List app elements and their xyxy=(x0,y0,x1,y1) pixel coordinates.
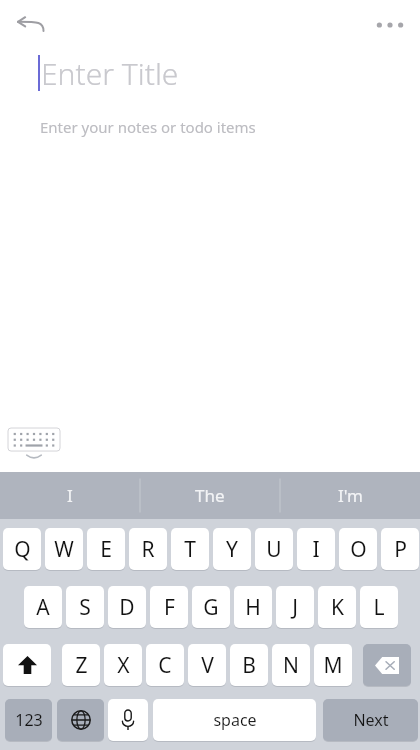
button[interactable]: K xyxy=(318,586,356,628)
button[interactable]: L xyxy=(360,586,398,628)
button[interactable]: D xyxy=(108,586,146,628)
staticText: H xyxy=(245,593,261,622)
staticText: Next xyxy=(353,709,389,731)
staticText: G xyxy=(203,593,219,622)
button[interactable]: M xyxy=(314,644,352,686)
staticText: V xyxy=(201,651,214,680)
button[interactable]: Q xyxy=(3,528,41,570)
staticText: X xyxy=(117,651,130,680)
button[interactable]: T xyxy=(171,528,209,570)
button[interactable]: V xyxy=(188,644,226,686)
button[interactable]: Voice input xyxy=(108,699,148,741)
staticText: A xyxy=(36,593,50,622)
staticText: M xyxy=(323,651,343,680)
button[interactable]: The xyxy=(140,472,280,519)
staticText: U xyxy=(266,535,282,564)
button[interactable]: B xyxy=(230,644,268,686)
staticText: O xyxy=(350,535,367,564)
staticText: Q xyxy=(14,535,31,564)
staticText: W xyxy=(54,535,74,564)
staticText: The xyxy=(195,484,225,507)
staticText: S xyxy=(79,593,91,622)
staticText: B xyxy=(242,651,256,680)
staticText: Enter Title xyxy=(41,53,179,94)
button[interactable]: C xyxy=(146,644,184,686)
button[interactable]: Back xyxy=(8,6,52,42)
staticText: I'm xyxy=(338,484,363,507)
button[interactable]: N xyxy=(272,644,310,686)
button[interactable]: W xyxy=(45,528,83,570)
button[interactable]: space xyxy=(153,699,316,741)
staticText: 123 xyxy=(15,709,43,731)
staticText: I xyxy=(67,484,73,507)
staticText: L xyxy=(373,593,385,622)
button[interactable]: O xyxy=(339,528,377,570)
staticText: K xyxy=(331,593,344,622)
staticText: R xyxy=(141,535,155,564)
button[interactable]: More options xyxy=(368,8,412,42)
button[interactable]: Shift xyxy=(3,644,51,686)
button[interactable]: A xyxy=(24,586,62,628)
staticText: Y xyxy=(226,535,238,564)
button[interactable]: Z xyxy=(62,644,100,686)
button[interactable]: F xyxy=(150,586,188,628)
button[interactable]: I xyxy=(297,528,335,570)
staticText: E xyxy=(100,535,112,564)
button[interactable]: U xyxy=(255,528,293,570)
staticText: F xyxy=(164,593,175,622)
staticText: T xyxy=(184,535,196,564)
button[interactable]: G xyxy=(192,586,230,628)
staticText: P xyxy=(394,535,407,564)
staticText: I xyxy=(312,535,320,564)
button[interactable]: J xyxy=(276,586,314,628)
staticText: Enter your notes or todo items xyxy=(40,117,256,137)
staticText: Z xyxy=(75,651,88,680)
button[interactable]: Backspace xyxy=(363,644,411,686)
button[interactable]: Change keyboard xyxy=(57,699,104,741)
staticText: N xyxy=(283,651,299,680)
button[interactable]: I xyxy=(0,472,140,519)
button[interactable]: S xyxy=(66,586,104,628)
staticText: J xyxy=(292,593,298,622)
button[interactable]: P xyxy=(381,528,419,570)
staticText: space xyxy=(213,709,257,731)
staticText: C xyxy=(158,651,172,680)
button[interactable]: X xyxy=(104,644,142,686)
button[interactable]: H xyxy=(234,586,272,628)
button[interactable]: E xyxy=(87,528,125,570)
button[interactable]: 123 xyxy=(5,699,52,741)
button[interactable]: I'm xyxy=(280,472,420,519)
button[interactable]: Hide keyboard xyxy=(8,428,60,460)
button[interactable]: Y xyxy=(213,528,251,570)
button[interactable]: Enter Title xyxy=(30,48,390,98)
button[interactable]: Enter your notes or todo items xyxy=(40,112,380,142)
button[interactable]: R xyxy=(129,528,167,570)
button[interactable]: Next xyxy=(323,699,418,741)
staticText: D xyxy=(119,593,135,622)
